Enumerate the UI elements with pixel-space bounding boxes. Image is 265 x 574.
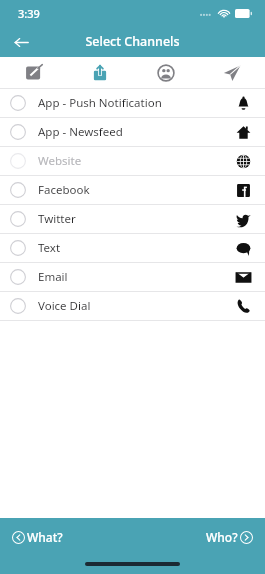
staticText: Select Channels (85, 33, 180, 50)
staticText: App - Newsfeed (38, 124, 123, 140)
button[interactable]: Back (6, 27, 36, 57)
button[interactable]: Compose (0, 57, 67, 88)
button[interactable]: App - Push Notification (0, 89, 265, 117)
button[interactable]: Voice Dial (0, 292, 265, 320)
button[interactable]: Text (0, 234, 265, 262)
staticText: Who? (206, 529, 238, 545)
button[interactable]: App - Newsfeed (0, 118, 265, 146)
button[interactable]: Website (0, 147, 265, 175)
staticText: Twitter (38, 211, 76, 227)
button[interactable]: Who? (202, 526, 257, 548)
button[interactable]: Share (67, 57, 133, 88)
button[interactable]: What? (8, 526, 67, 548)
staticText: Facebook (38, 182, 90, 198)
staticText: Website (38, 153, 82, 169)
button[interactable]: Contacts (133, 57, 199, 88)
staticText: 3:39 (18, 6, 40, 21)
staticText: Text (38, 240, 61, 256)
staticText: What? (27, 529, 63, 545)
button[interactable]: Twitter (0, 205, 265, 233)
button[interactable]: Email (0, 263, 265, 291)
button[interactable]: Facebook (0, 176, 265, 204)
button[interactable]: Send (199, 57, 265, 88)
staticText: App - Push Notification (38, 95, 162, 111)
staticText: Email (38, 269, 68, 285)
staticText: Voice Dial (38, 298, 91, 314)
